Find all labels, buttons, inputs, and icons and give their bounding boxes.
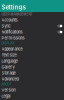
button[interactable]: Version bbox=[0, 87, 64, 93]
staticText: Version bbox=[1, 88, 15, 92]
button[interactable]: Permissions bbox=[0, 35, 64, 41]
staticText: Storage bbox=[1, 71, 15, 75]
staticText: Advanced bbox=[1, 77, 18, 81]
staticText: Settings bbox=[1, 4, 25, 11]
staticText: ABOUT bbox=[1, 83, 11, 86]
staticText: Legal bbox=[1, 94, 10, 98]
staticText: Appearance bbox=[1, 47, 22, 51]
staticText: Permissions bbox=[1, 36, 24, 40]
button[interactable]: Language bbox=[0, 58, 64, 64]
button[interactable]: Accounts bbox=[0, 17, 64, 23]
button[interactable]: Text size bbox=[0, 52, 64, 58]
button[interactable]: Legal bbox=[0, 93, 64, 99]
button[interactable]: Notifications bbox=[0, 29, 64, 35]
staticText: DISPLAY bbox=[1, 42, 14, 45]
button[interactable]: Sync bbox=[0, 23, 64, 29]
staticText: Language bbox=[1, 59, 17, 63]
button[interactable]: Appearance bbox=[0, 46, 64, 52]
button[interactable]: Advanced bbox=[0, 76, 64, 82]
staticText: Accounts bbox=[1, 18, 17, 22]
button[interactable]: Gallery bbox=[0, 64, 64, 70]
button[interactable]: Storage bbox=[0, 70, 64, 76]
staticText: Gallery bbox=[1, 65, 14, 69]
staticText: Sync bbox=[1, 24, 10, 28]
staticText: USER MANAGEMENT bbox=[1, 13, 32, 16]
staticText: Notifications bbox=[1, 30, 22, 34]
staticText: Text size bbox=[1, 53, 16, 57]
